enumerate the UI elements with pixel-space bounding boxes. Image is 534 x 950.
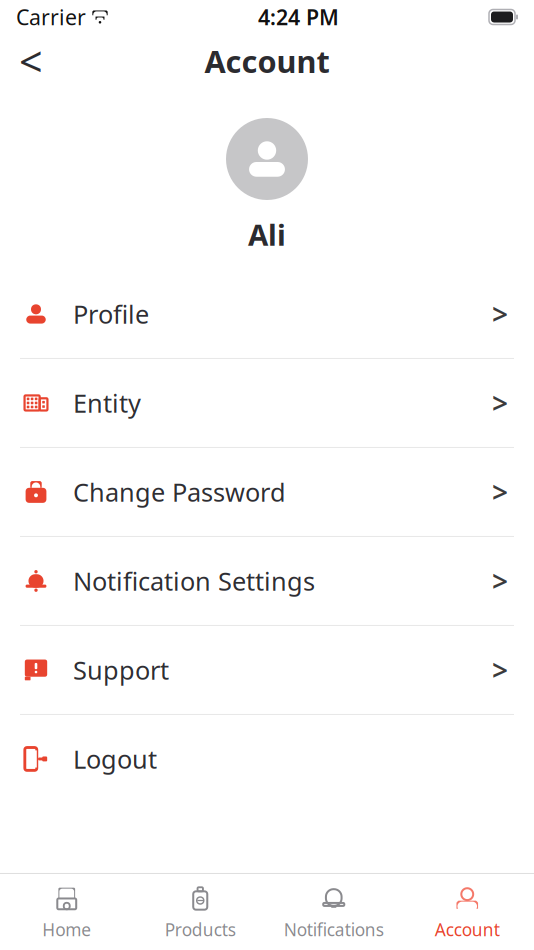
staticText: >: [492, 295, 508, 333]
button[interactable]: Notifications: [267, 874, 400, 950]
staticText: >: [492, 473, 508, 511]
staticText: Carrier: [16, 3, 86, 31]
button[interactable]: Products: [133, 874, 267, 950]
staticText: Account: [435, 918, 500, 941]
staticText: Logout: [73, 742, 157, 776]
button[interactable]: Support: [0, 626, 534, 714]
staticText: Profile: [73, 297, 149, 331]
staticText: <: [19, 34, 43, 88]
button[interactable]: Account: [400, 874, 534, 950]
staticText: Support: [73, 653, 169, 687]
button[interactable]: Change Password: [0, 448, 534, 536]
staticText: >: [492, 384, 508, 422]
staticText: Change Password: [73, 475, 286, 509]
button[interactable]: Entity: [0, 359, 534, 447]
staticText: 4:24 PM: [258, 3, 339, 31]
staticText: Products: [165, 918, 236, 941]
staticText: >: [492, 562, 508, 600]
staticText: >: [492, 651, 508, 689]
staticText: Ali: [248, 215, 286, 254]
button[interactable]: Logout: [0, 715, 534, 803]
button[interactable]: Notification Settings: [0, 537, 534, 625]
staticText: Notifications: [284, 918, 384, 941]
staticText: Account: [204, 41, 329, 81]
button[interactable]: Profile: [0, 270, 534, 358]
button[interactable]: Back: [9, 39, 53, 83]
staticText: Notification Settings: [73, 564, 315, 598]
staticText: Entity: [73, 386, 141, 420]
staticText: Home: [42, 918, 91, 941]
button[interactable]: Home: [0, 874, 133, 950]
